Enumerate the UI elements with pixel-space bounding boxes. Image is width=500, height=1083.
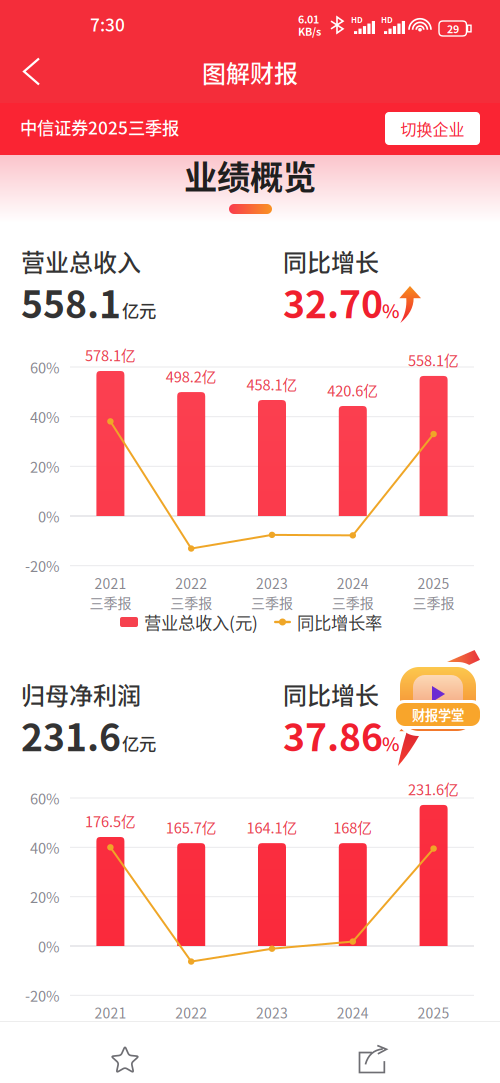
staticText: 2021: [94, 1002, 126, 1023]
staticText: 60%: [30, 356, 60, 378]
staticText: 2023: [256, 573, 288, 593]
staticText: 578.1亿: [85, 344, 136, 366]
staticText: 三季报: [251, 592, 293, 612]
button[interactable]: 分享: [345, 1031, 400, 1083]
staticText: 2021: [94, 573, 126, 593]
staticText: 176.5亿: [85, 810, 136, 832]
staticText: 558.1亿: [408, 349, 459, 370]
staticText: 37.86: [283, 708, 383, 762]
staticText: 29: [447, 21, 459, 36]
staticText: 7:30: [90, 11, 125, 37]
staticText: 20%: [30, 886, 60, 907]
staticText: 0%: [38, 505, 60, 527]
button[interactable]: 收藏: [96, 1031, 154, 1083]
staticText: 165.7亿: [166, 816, 217, 838]
staticText: 三季报: [332, 592, 374, 612]
staticText: HD: [381, 14, 393, 25]
staticText: 32.70: [283, 275, 383, 329]
staticText: 业绩概览: [184, 151, 316, 199]
staticText: 2024: [337, 573, 369, 593]
staticText: 40%: [30, 406, 60, 427]
staticText: 164.1亿: [246, 816, 297, 838]
staticText: 归母净利润: [21, 677, 141, 711]
staticText: 三季报: [413, 592, 455, 612]
staticText: 营业总收入(元): [144, 609, 258, 635]
staticText: 60%: [30, 787, 60, 809]
button[interactable]: 返回: [0, 45, 59, 97]
staticText: 458.1亿: [246, 373, 297, 395]
staticText: -20%: [25, 985, 60, 1006]
staticText: 亿元: [122, 730, 156, 756]
staticText: 2024: [337, 1002, 369, 1023]
button[interactable]: 切换企业: [385, 112, 480, 145]
staticText: 40%: [30, 837, 60, 858]
staticText: 558.1: [21, 275, 121, 329]
staticText: 498.2亿: [166, 365, 217, 387]
staticText: 图解财报: [202, 55, 298, 89]
staticText: 2023: [256, 1002, 288, 1023]
staticText: 0%: [38, 935, 60, 957]
staticText: 168亿: [333, 816, 372, 838]
staticText: 中信证券2025三季报: [20, 114, 179, 140]
staticText: 2022: [175, 1002, 207, 1023]
staticText: 20%: [30, 456, 60, 477]
staticText: 2022: [175, 573, 207, 593]
staticText: 三季报: [89, 592, 131, 612]
staticText: 231.6亿: [408, 778, 459, 799]
staticText: 6.01: [298, 11, 319, 26]
staticText: 2025: [418, 1002, 450, 1023]
staticText: 亿元: [122, 297, 156, 323]
staticText: 营业总收入: [21, 244, 141, 278]
staticText: 同比增长率: [297, 609, 382, 635]
staticText: 三季报: [170, 592, 212, 612]
staticText: %: [382, 296, 400, 323]
staticText: KB/s: [298, 23, 321, 39]
staticText: 420.6亿: [327, 379, 378, 401]
staticText: 切换企业: [400, 117, 464, 140]
staticText: 同比增长: [283, 244, 379, 278]
staticText: %: [382, 729, 400, 756]
staticText: 231.6: [21, 708, 121, 762]
staticText: HD: [351, 14, 363, 25]
staticText: 同比增长: [283, 677, 379, 711]
staticText: 财报学堂: [412, 705, 464, 724]
staticText: 2025: [418, 573, 450, 593]
staticText: -20%: [25, 555, 60, 576]
